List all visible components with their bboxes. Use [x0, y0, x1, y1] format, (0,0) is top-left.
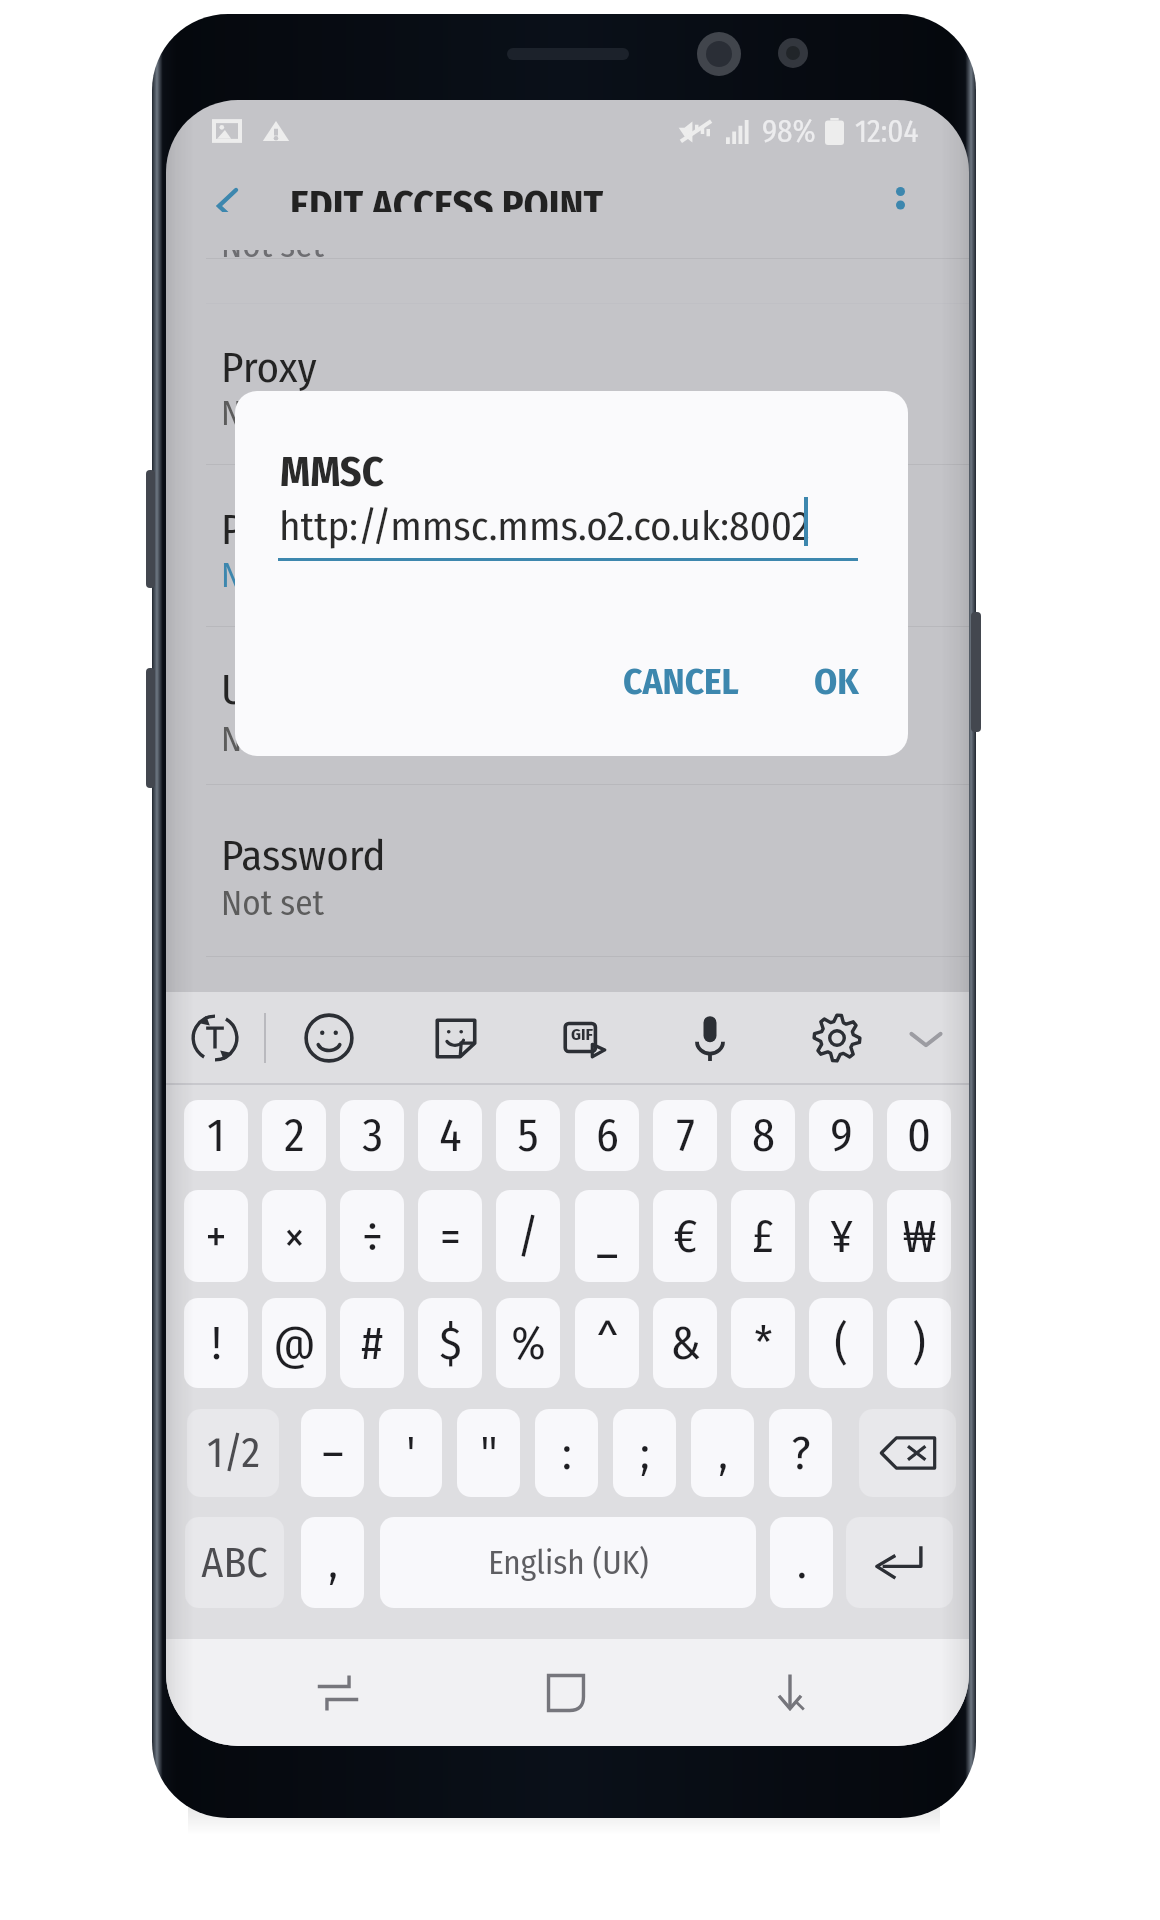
button[interactable]: @ — [262, 1298, 326, 1388]
staticText: 5 — [517, 1108, 539, 1163]
button[interactable]: 2 — [262, 1100, 326, 1171]
staticText: 4 — [439, 1108, 462, 1163]
button[interactable]: = — [418, 1190, 482, 1282]
staticText: ! — [211, 1316, 222, 1371]
button[interactable]: : — [535, 1409, 598, 1497]
button[interactable]: ABC — [185, 1517, 284, 1608]
staticText: 7 — [676, 1108, 695, 1163]
button[interactable]: 4 — [418, 1100, 482, 1171]
staticText: MMSC — [280, 447, 384, 497]
button[interactable]: CANCEL — [611, 644, 751, 718]
staticText: – — [322, 1426, 344, 1481]
staticText: ÷ — [362, 1209, 383, 1264]
staticText: , — [328, 1535, 338, 1590]
staticText: + — [205, 1209, 227, 1264]
button[interactable]: , — [691, 1409, 754, 1497]
button[interactable]: " — [457, 1409, 520, 1497]
button[interactable]: Hide keyboard — [744, 1639, 836, 1746]
staticText: * — [754, 1316, 773, 1371]
staticText: GIF — [571, 1024, 594, 1044]
staticText: Not set — [221, 882, 325, 924]
staticText: 8 — [752, 1108, 775, 1163]
button[interactable]: 0 — [887, 1100, 951, 1171]
button[interactable]: 1 — [184, 1100, 248, 1171]
button[interactable]: 1/2 — [187, 1409, 279, 1497]
button[interactable]: 8 — [731, 1100, 795, 1171]
staticText: CANCEL — [623, 659, 739, 703]
button[interactable]: ? — [769, 1409, 832, 1497]
button[interactable]: ^ — [575, 1298, 639, 1388]
staticText: 1 — [207, 1108, 225, 1163]
button[interactable]: ) — [887, 1298, 951, 1388]
button[interactable]: ¥ — [809, 1190, 873, 1282]
button[interactable]: 9 — [809, 1100, 873, 1171]
staticText: × — [284, 1209, 305, 1264]
staticText: EDIT ACCESS POINT — [290, 182, 604, 230]
button[interactable]: $ — [418, 1298, 482, 1388]
button[interactable]: More options — [855, 155, 945, 255]
staticText: , — [718, 1426, 728, 1481]
button[interactable]: English (UK) — [380, 1517, 756, 1608]
button[interactable]: € — [653, 1190, 717, 1282]
staticText: 98% — [762, 113, 816, 150]
staticText: ' — [406, 1426, 416, 1481]
button[interactable]: Stickers — [416, 998, 496, 1078]
staticText: 3 — [362, 1108, 383, 1163]
staticText: 2 — [284, 1108, 305, 1163]
button[interactable]: ' — [379, 1409, 442, 1497]
button[interactable]: Collapse keyboard — [886, 998, 966, 1078]
button[interactable]: Voice input — [670, 998, 750, 1078]
staticText: : — [562, 1426, 572, 1481]
button[interactable]: 3 — [340, 1100, 404, 1171]
staticText: 1/2 — [207, 1428, 260, 1478]
button[interactable]: OK — [797, 644, 875, 718]
staticText: / — [517, 1209, 539, 1264]
staticText: 6 — [596, 1108, 619, 1163]
button[interactable]: % — [496, 1298, 560, 1388]
button[interactable]: Home — [520, 1639, 612, 1746]
staticText: Not set — [221, 554, 325, 596]
button[interactable]: # — [340, 1298, 404, 1388]
staticText: Username — [221, 664, 399, 716]
staticText: . — [797, 1535, 807, 1590]
staticText: ₩ — [902, 1209, 937, 1264]
staticText: English (UK) — [488, 1543, 649, 1583]
button[interactable]: , — [301, 1517, 364, 1608]
button[interactable]: _ — [575, 1190, 639, 1282]
staticText: = — [440, 1209, 461, 1264]
button[interactable]: ; — [613, 1409, 676, 1497]
button[interactable]: ! — [184, 1298, 248, 1388]
button[interactable]: – — [301, 1409, 364, 1497]
button[interactable]: Keyboard settings — [797, 998, 877, 1078]
button[interactable]: . — [770, 1517, 833, 1608]
button[interactable]: £ — [731, 1190, 795, 1282]
button[interactable]: & — [653, 1298, 717, 1388]
staticText: € — [673, 1209, 698, 1264]
staticText: ¥ — [830, 1209, 853, 1264]
button[interactable]: 7 — [653, 1100, 717, 1171]
button[interactable]: Backspace — [859, 1409, 956, 1497]
button[interactable]: ₩ — [887, 1190, 951, 1282]
button[interactable]: ÷ — [340, 1190, 404, 1282]
button[interactable]: + — [184, 1190, 248, 1282]
button[interactable]: Text mode — [175, 998, 255, 1078]
button[interactable]: Emoji — [289, 998, 369, 1078]
button[interactable]: 5 — [496, 1100, 560, 1171]
button[interactable]: Recents — [292, 1639, 384, 1746]
staticText: _ — [596, 1209, 618, 1264]
button[interactable]: × — [262, 1190, 326, 1282]
staticText: # — [361, 1316, 383, 1371]
button[interactable]: / — [496, 1190, 560, 1282]
button[interactable]: GIF — [545, 998, 625, 1078]
staticText: ABC — [201, 1538, 268, 1588]
staticText: Port — [221, 504, 294, 556]
button[interactable]: Navigate up — [182, 156, 272, 256]
button[interactable]: Enter — [846, 1517, 953, 1608]
staticText: @ — [273, 1316, 316, 1371]
staticText: http://mmsc.mms.o2.co.uk:8002 — [279, 502, 810, 551]
button[interactable]: 6 — [575, 1100, 639, 1171]
staticText: % — [511, 1316, 546, 1371]
button[interactable]: ( — [809, 1298, 873, 1388]
button[interactable]: * — [731, 1298, 795, 1388]
staticText: Proxy — [221, 342, 317, 394]
